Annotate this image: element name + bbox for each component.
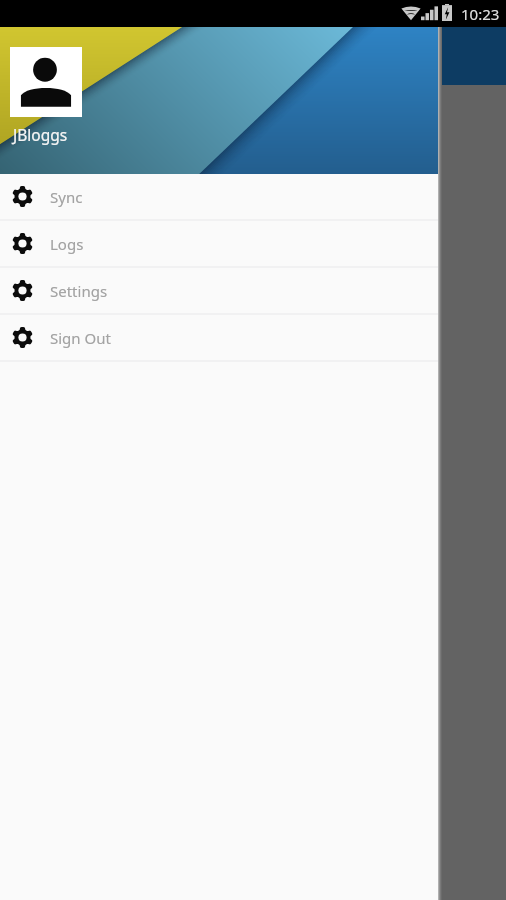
- staticText: Sync: [50, 187, 83, 207]
- staticText: JBloggs: [13, 124, 68, 145]
- staticText: 10:23: [461, 4, 500, 24]
- staticText: Sign Out: [50, 328, 111, 348]
- button[interactable]: JBloggs: [0, 27, 438, 174]
- button[interactable]: Sync: [0, 174, 438, 221]
- button[interactable]: Logs: [0, 221, 438, 268]
- button[interactable]: Sign Out: [0, 315, 438, 362]
- button[interactable]: Settings: [0, 268, 438, 315]
- staticText: Settings: [50, 281, 108, 301]
- staticText: Logs: [50, 234, 84, 254]
- button[interactable]: Close navigation drawer: [0, 85, 506, 900]
